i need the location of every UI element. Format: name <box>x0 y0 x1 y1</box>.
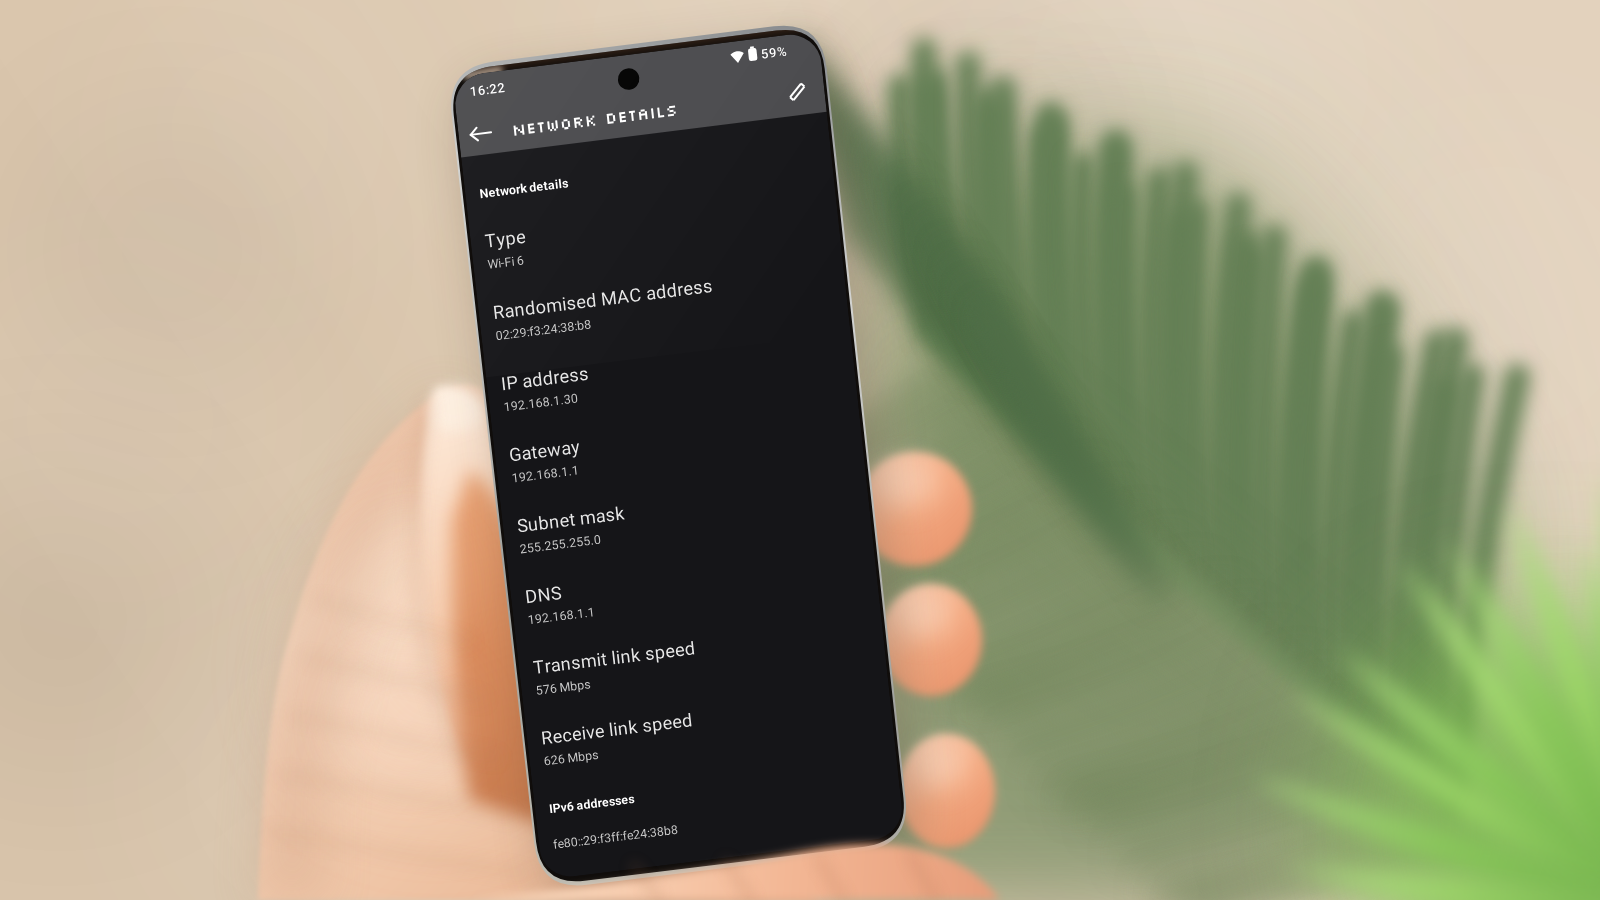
button[interactable]: Type, Wi-Fi 6 <box>468 180 841 294</box>
button[interactable]: Back <box>458 111 507 157</box>
button[interactable]: IP address, 192.168.1.30 <box>485 323 857 437</box>
button[interactable]: Receive link speed, 626 Mbps <box>525 678 895 790</box>
button[interactable]: Randomised MAC address, 02:29:f3:24:38:b… <box>476 251 848 365</box>
button[interactable]: Transmit link speed, 576 Mbps <box>517 607 887 720</box>
button[interactable]: Gateway, 192.168.1.1 <box>493 394 865 507</box>
button[interactable]: Edit <box>766 67 821 119</box>
button[interactable]: IPv6 addresses, fe80::29:f3ff:fe24:38b8 <box>532 745 903 866</box>
button[interactable]: DNS, 192.168.1.1 <box>509 536 880 649</box>
button[interactable]: Subnet mask, 255.255.255.0 <box>501 465 872 578</box>
